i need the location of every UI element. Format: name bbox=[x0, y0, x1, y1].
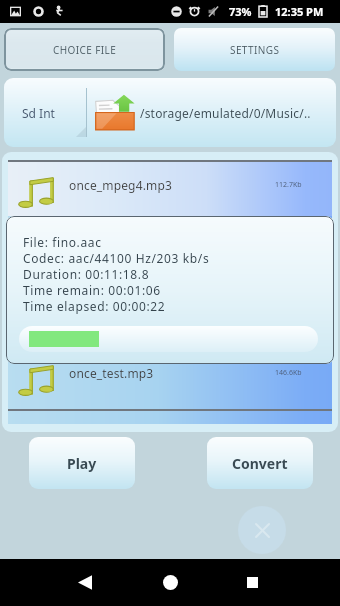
staticText: Sd Int bbox=[22, 105, 55, 121]
staticText: Play bbox=[67, 454, 97, 473]
staticText: Convert bbox=[232, 454, 288, 473]
button[interactable]: once_test.mp3 bbox=[8, 350, 332, 404]
button[interactable]: Home bbox=[143, 559, 197, 606]
staticText: CHOICE FILE bbox=[53, 43, 117, 57]
staticText: File: fino.aac bbox=[23, 234, 102, 250]
button[interactable]: CHOICE FILE bbox=[4, 28, 165, 71]
button[interactable]: Back bbox=[58, 559, 112, 606]
button[interactable]: once_mpeg4.mp3 bbox=[8, 162, 332, 216]
button[interactable]: SETTINGS bbox=[174, 28, 335, 71]
staticText: Time elapsed: 00:00:22 bbox=[23, 298, 166, 314]
button[interactable]: Recents bbox=[225, 559, 279, 606]
button[interactable]: Sd Int bbox=[4, 78, 336, 147]
staticText: 112.7Kb bbox=[275, 180, 302, 190]
staticText: once_test.mp3 bbox=[69, 365, 154, 381]
staticText: Duration: 00:11:18.8 bbox=[23, 266, 150, 282]
staticText: SETTINGS bbox=[230, 43, 280, 57]
staticText: Codec: aac/44100 Hz/203 kb/s bbox=[23, 250, 210, 266]
staticText: 73% bbox=[229, 4, 252, 19]
button[interactable]: Play bbox=[29, 437, 135, 489]
staticText: Time remain: 00:01:06 bbox=[23, 282, 161, 298]
staticText: once_mpeg4.mp3 bbox=[69, 177, 172, 193]
staticText: 146.6Kb bbox=[275, 368, 302, 378]
staticText: /storage/emulated/0/Music/.. bbox=[140, 105, 311, 121]
button[interactable]: Convert bbox=[207, 437, 313, 489]
staticText: 12:35 PM bbox=[275, 4, 324, 19]
button[interactable]: Close bbox=[238, 506, 286, 554]
